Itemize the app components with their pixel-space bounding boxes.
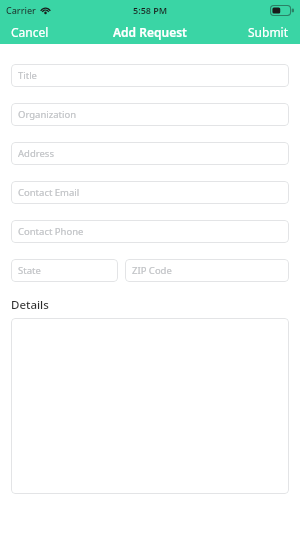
button[interactable]: Cancel <box>0 21 60 43</box>
button[interactable]: Organization <box>11 103 289 126</box>
staticText: Address <box>18 147 54 160</box>
staticText: Contact Phone <box>18 225 84 238</box>
button[interactable]: Details <box>11 297 49 313</box>
staticText: State <box>18 264 41 277</box>
button[interactable]: Contact Email <box>11 181 289 204</box>
staticText: Cancel <box>11 24 49 40</box>
button[interactable]: Details text area <box>11 318 289 494</box>
button[interactable]: State <box>11 259 118 282</box>
staticText: Contact Email <box>18 186 80 199</box>
staticText: Add Request <box>113 24 187 40</box>
staticText: Title <box>18 69 37 82</box>
button[interactable]: Address <box>11 142 289 165</box>
button[interactable]: ZIP Code <box>125 259 289 282</box>
staticText: Carrier <box>6 4 36 16</box>
staticText: Organization <box>18 108 77 121</box>
button[interactable]: Submit <box>237 21 300 43</box>
staticText: Submit <box>248 24 289 40</box>
button[interactable]: Contact Phone <box>11 220 289 243</box>
staticText: 5:58 PM <box>133 4 168 16</box>
button[interactable]: Title <box>11 64 289 87</box>
staticText: ZIP Code <box>132 264 172 277</box>
